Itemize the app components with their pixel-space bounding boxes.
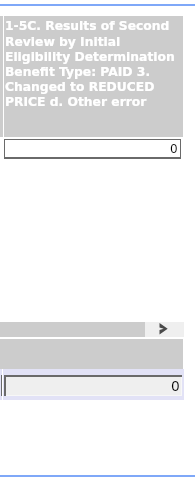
- staticText: 0: [171, 378, 180, 394]
- button[interactable]: 0: [4, 375, 182, 396]
- staticText: 1-5C. Results of Second Review by Initia…: [5, 19, 180, 109]
- button[interactable]: Expand section: [145, 322, 184, 337]
- staticText: 0: [170, 142, 178, 156]
- button[interactable]: 0: [4, 139, 181, 159]
